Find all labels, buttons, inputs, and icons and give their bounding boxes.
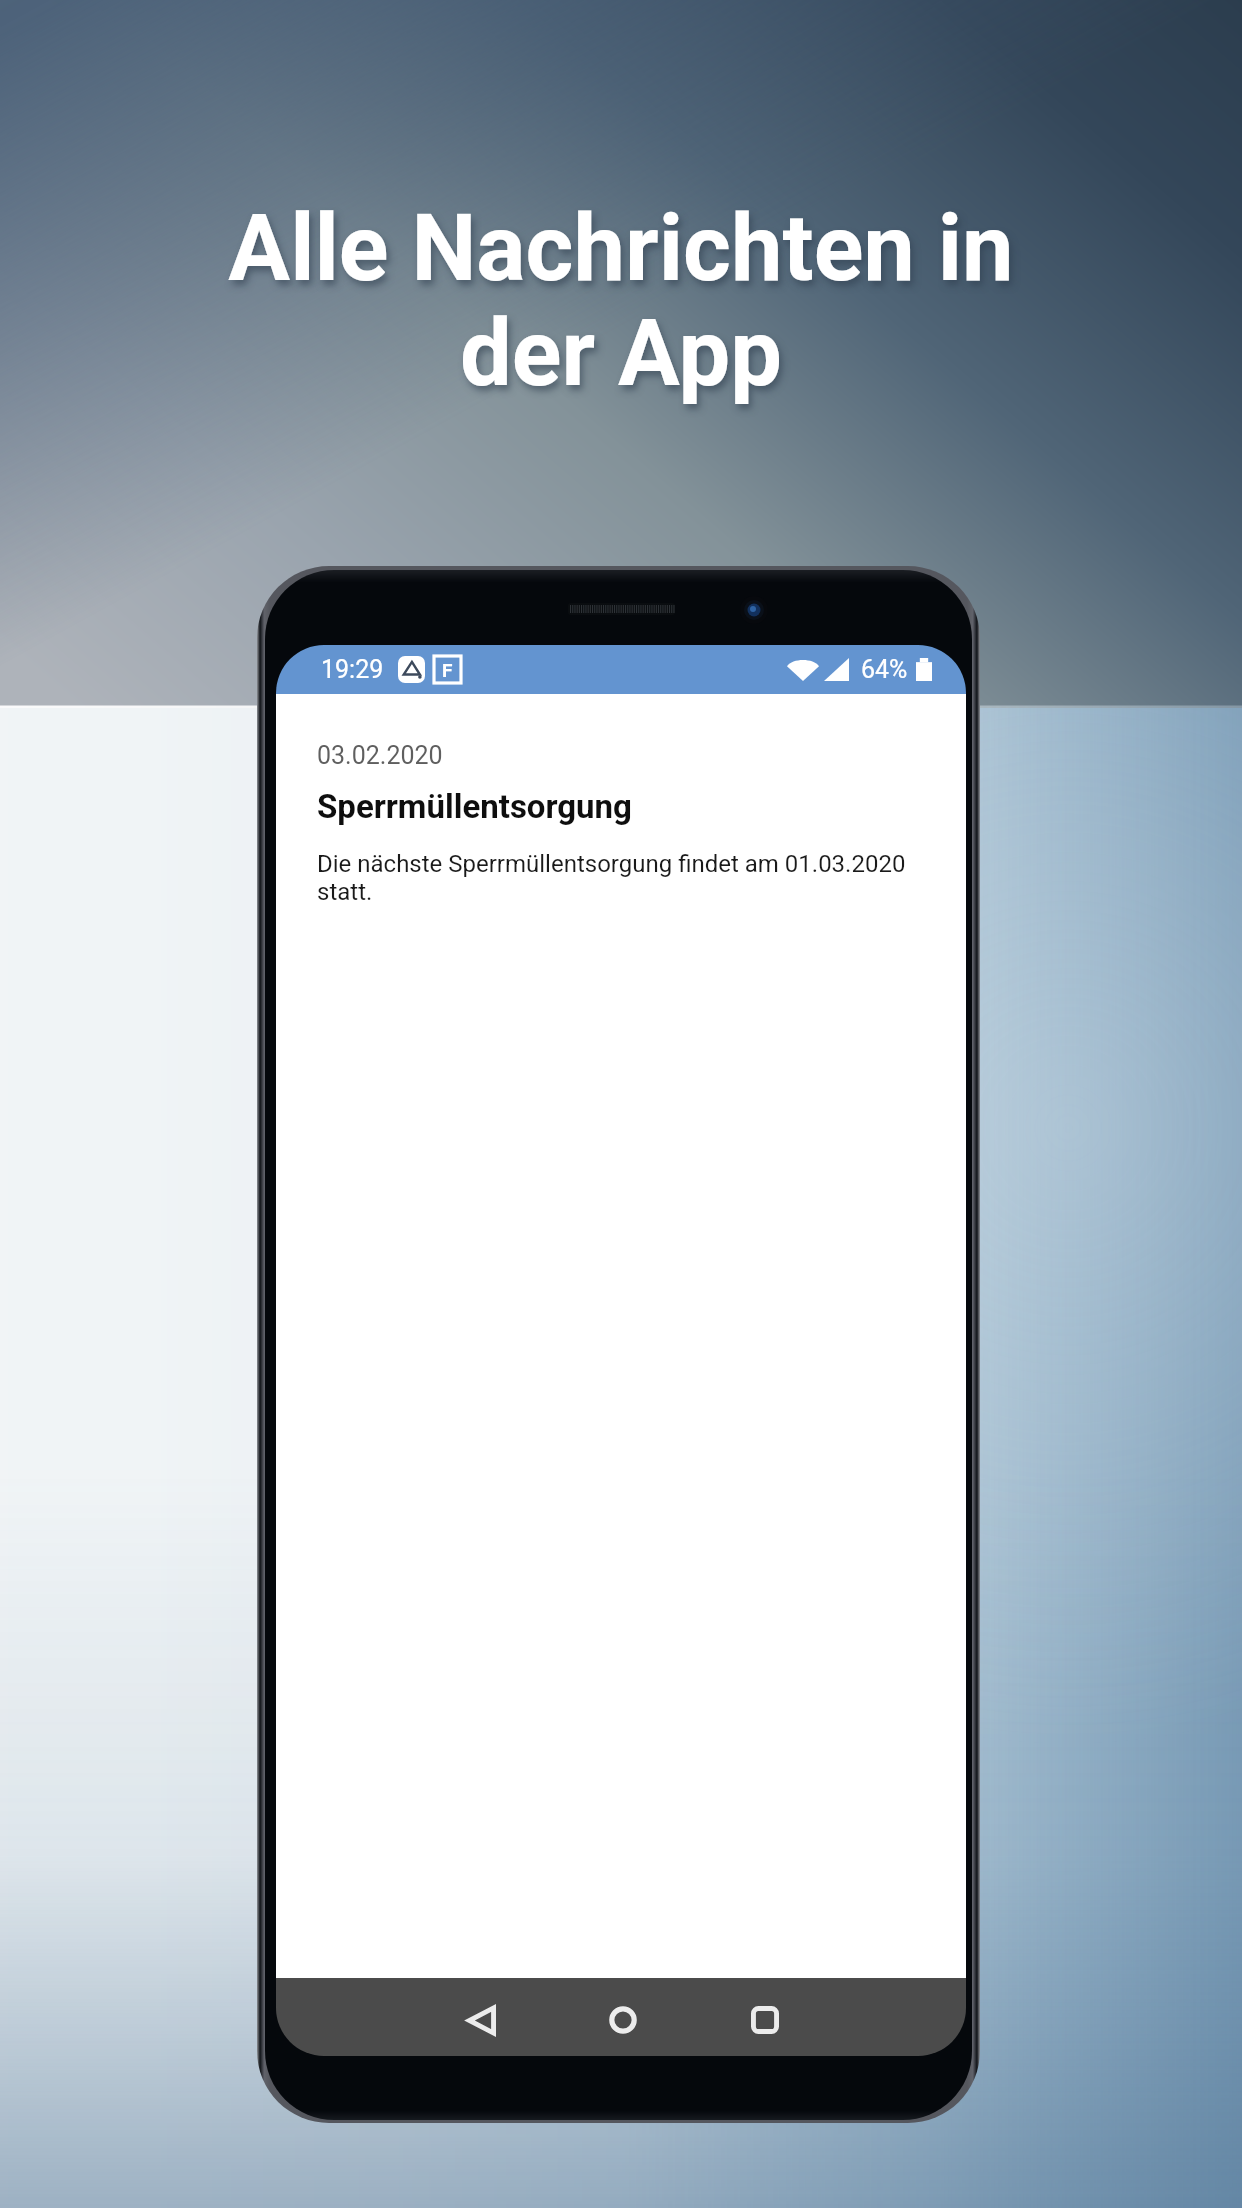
- staticText: 19:29: [321, 655, 384, 684]
- staticText: F: [442, 659, 453, 681]
- staticText: Die nächste Sperrmüllentsorgung findet a…: [317, 850, 952, 906]
- button[interactable]: Recent apps: [694, 1978, 836, 2056]
- staticText: 64%: [861, 655, 908, 684]
- button[interactable]: 03.02.2020: [276, 694, 966, 906]
- button[interactable]: Back: [410, 1978, 552, 2056]
- staticText: Alle Nachrichten in der App: [110, 195, 1132, 408]
- staticText: 03.02.2020: [317, 741, 443, 770]
- button[interactable]: Home: [552, 1978, 694, 2056]
- staticText: Sperrmüllentsorgung: [317, 787, 632, 826]
